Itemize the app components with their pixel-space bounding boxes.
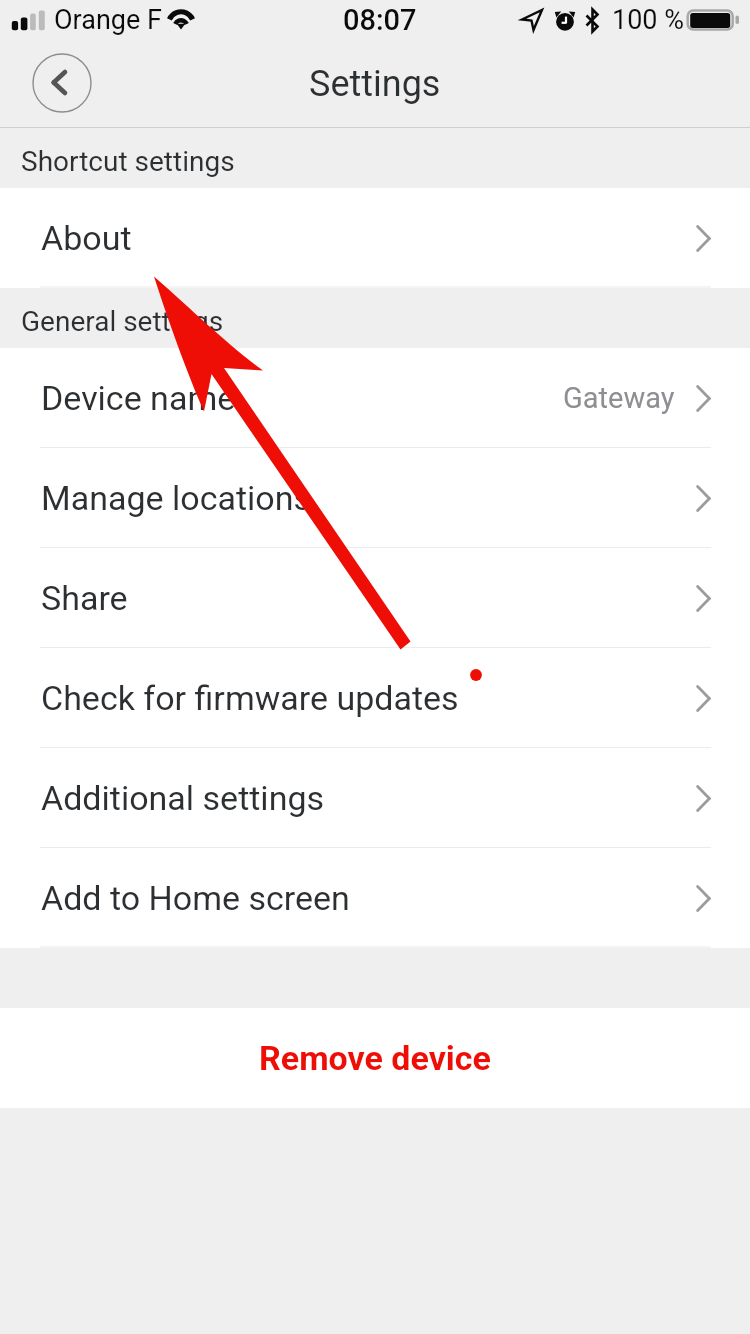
staticText: Shortcut settings [21, 145, 235, 178]
button[interactable]: Share [0, 548, 750, 648]
staticText: Add to Home screen [41, 878, 350, 918]
button[interactable]: Device name [0, 348, 750, 448]
staticText: Remove device [259, 1038, 491, 1078]
staticText: Additional settings [41, 778, 325, 818]
button[interactable]: Additional settings [0, 748, 750, 848]
staticText: Check for firmware updates [41, 678, 459, 718]
staticText: Share [41, 578, 128, 618]
button[interactable]: Add to Home screen [0, 848, 750, 948]
button[interactable]: Check for firmware updates [0, 648, 750, 748]
staticText: Manage locations [41, 478, 312, 518]
button[interactable]: Back [31, 52, 93, 114]
staticText: About [41, 218, 132, 258]
staticText: Gateway [563, 381, 675, 415]
button[interactable]: Remove device [0, 1008, 750, 1108]
staticText: Orange F [54, 4, 162, 36]
staticText: Settings [309, 63, 441, 105]
staticText: General settings [21, 305, 224, 338]
staticText: 08:07 [343, 3, 417, 37]
button[interactable]: About [0, 188, 750, 288]
staticText: Device name [41, 378, 236, 418]
staticText: 100 % [612, 4, 684, 36]
button[interactable]: Manage locations [0, 448, 750, 548]
